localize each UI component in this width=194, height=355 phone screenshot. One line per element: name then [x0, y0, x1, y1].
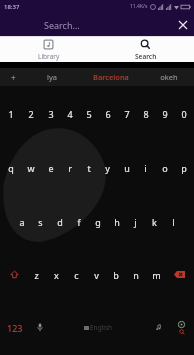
button[interactable]: 5 [79, 87, 98, 141]
staticText: 11.4K/s [130, 3, 148, 10]
button[interactable]: 2 [21, 87, 41, 141]
button[interactable]: 0 [174, 87, 193, 141]
staticText: i [144, 162, 147, 174]
staticText: 2 [28, 108, 34, 120]
button[interactable]: p [174, 141, 193, 195]
staticText: s [38, 216, 43, 228]
staticText: 4 [67, 108, 73, 120]
button[interactable]: a [12, 195, 31, 248]
button[interactable]: c [66, 248, 86, 301]
button[interactable]: r [60, 141, 79, 195]
staticText: k [152, 216, 157, 228]
staticText: h [114, 216, 120, 228]
button[interactable]: n [126, 248, 146, 301]
button[interactable]: w [21, 141, 41, 195]
staticText: l [172, 216, 175, 228]
staticText: o [162, 162, 168, 174]
button[interactable]: 7 [117, 87, 136, 141]
button[interactable]: b [106, 248, 126, 301]
staticText: + [11, 72, 16, 83]
button[interactable]: Backspace [166, 248, 193, 301]
button[interactable]: f [69, 195, 88, 248]
staticText: Search... [44, 19, 80, 31]
button[interactable]: v [86, 248, 106, 301]
staticText: 3 [48, 108, 54, 120]
button[interactable]: More suggestions [0, 68, 27, 86]
staticText: z [34, 269, 39, 281]
staticText: c [74, 269, 79, 281]
button[interactable]: k [145, 195, 164, 248]
staticText: okeh [160, 72, 178, 82]
staticText: b [113, 269, 119, 281]
button[interactable]: Close search [171, 13, 194, 36]
button[interactable]: 1 [1, 87, 21, 141]
staticText: 1 [8, 108, 14, 120]
staticText: v [94, 269, 99, 281]
button[interactable]: y [98, 141, 117, 195]
button[interactable]: Library [0, 37, 97, 62]
button[interactable]: 8 [136, 87, 155, 141]
button[interactable]: Space [50, 305, 147, 350]
staticText: 5 [86, 108, 92, 120]
button[interactable]: Search [97, 37, 194, 62]
button[interactable]: t [79, 141, 98, 195]
button[interactable]: o [155, 141, 174, 195]
button[interactable]: z [27, 248, 46, 301]
staticText: a [19, 216, 25, 228]
staticText: Barcelona [93, 72, 129, 82]
staticText: 9 [162, 108, 168, 120]
button[interactable]: 6 [98, 87, 117, 141]
staticText: 8 [143, 108, 149, 120]
staticText: g [95, 216, 101, 228]
staticText: w [27, 162, 35, 174]
staticText: m [152, 269, 161, 281]
staticText: d [57, 216, 63, 228]
button[interactable]: Emoji and search [169, 301, 193, 354]
button[interactable]: i [136, 141, 155, 195]
button[interactable]: 123 [1, 301, 29, 354]
staticText: 7 [124, 108, 130, 120]
button[interactable]: 9 [155, 87, 174, 141]
button[interactable]: l [164, 195, 183, 248]
button[interactable]: x [46, 248, 66, 301]
staticText: 6 [105, 108, 111, 120]
staticText: j [134, 216, 137, 228]
button[interactable]: 4 [60, 87, 79, 141]
button[interactable]: j [126, 195, 145, 248]
staticText: p [181, 162, 187, 174]
button[interactable]: m [146, 248, 166, 301]
staticText: Library [38, 52, 60, 61]
staticText: r [68, 162, 72, 174]
staticText: q [8, 162, 14, 174]
button[interactable]: e [41, 141, 60, 195]
staticText: 0 [181, 108, 187, 120]
staticText: 18:37 [4, 3, 20, 11]
button[interactable]: q [1, 141, 21, 195]
button[interactable]: 3 [41, 87, 60, 141]
button[interactable]: s [31, 195, 50, 248]
staticText: u [124, 162, 130, 174]
staticText: x [54, 269, 59, 281]
staticText: t [87, 162, 91, 174]
button[interactable]: lya [27, 68, 77, 86]
button[interactable]: Voice input [29, 301, 50, 354]
button[interactable]: Barcelona [77, 68, 144, 86]
button[interactable]: u [117, 141, 136, 195]
button[interactable]: Shift [1, 248, 27, 301]
staticText: lya [47, 72, 57, 82]
button[interactable]: g [88, 195, 107, 248]
staticText: English [90, 323, 113, 332]
button[interactable]: d [50, 195, 69, 248]
button[interactable]: h [107, 195, 126, 248]
staticText: Search [135, 52, 157, 61]
staticText: f [77, 216, 81, 228]
staticText: 123 [7, 322, 23, 334]
button[interactable]: Music note [147, 301, 169, 354]
staticText: y [105, 162, 110, 174]
staticText: e [48, 162, 54, 174]
button[interactable]: okeh [144, 68, 194, 86]
staticText: n [133, 269, 139, 281]
